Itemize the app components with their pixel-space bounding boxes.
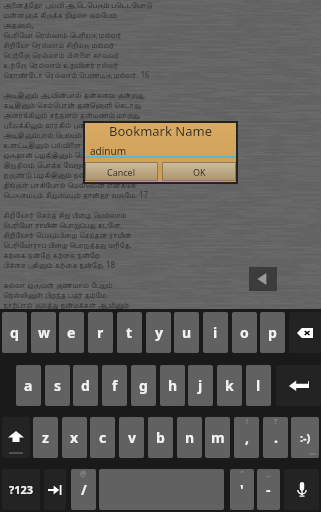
button[interactable]: emoji (291, 417, 319, 458)
staticText: adinum (90, 144, 127, 158)
staticText: OK (193, 166, 206, 178)
button[interactable]: @ (71, 469, 96, 510)
button[interactable]: s (45, 365, 70, 406)
button[interactable]: m (205, 417, 230, 458)
button[interactable]: Cancel (86, 163, 157, 180)
staticText: t (126, 323, 133, 342)
staticText: - (266, 480, 271, 499)
staticText: u (182, 323, 192, 342)
button[interactable]: g (131, 365, 156, 406)
button[interactable]: d (73, 365, 98, 406)
staticText: Cancel (107, 166, 136, 178)
staticText: ' (240, 480, 244, 499)
staticText: y (155, 323, 163, 342)
button[interactable]: shift (2, 417, 30, 458)
staticText: s (54, 376, 62, 395)
staticText: Bookmark Name (85, 122, 236, 140)
staticText: b (156, 428, 165, 447)
staticText: , (245, 428, 249, 447)
button[interactable]: ?123 (2, 469, 40, 510)
staticText: அடிஇனும் ஆவின்பால் தன்சுவை குன்றாது, (3, 89, 146, 99)
staticText: கற்கை நன்றே கற்கை நன்றே (3, 249, 100, 259)
button[interactable]: enter (276, 365, 321, 406)
button[interactable]: ! (234, 417, 259, 458)
button[interactable]: mic (284, 469, 319, 510)
button[interactable]: y (146, 312, 171, 353)
staticText: திங்குள் பாசிபோல் மெல்லென எனக்கே (3, 179, 136, 189)
staticText: h (168, 376, 178, 395)
staticText: சிறியோர் பெரும்பிழை செய்தன ராயின் (3, 229, 132, 239)
staticText: சிறியோ ரெல்லாம் சிறியரு மல்லர் (3, 39, 114, 49)
staticText: . (274, 428, 278, 447)
staticText: g (139, 376, 148, 395)
staticText: q (10, 323, 19, 342)
button[interactable]: c (90, 417, 115, 458)
button[interactable]: b (148, 417, 173, 458)
staticText: நாற்பால் குலத்து நன்மக்கள் ஆயினும் (3, 299, 129, 309)
staticText: c (99, 428, 107, 447)
staticText: உளட்டிஇனும் பல்விளை ரென்பது மரிதே (3, 139, 135, 149)
button[interactable]: a (16, 365, 41, 406)
staticText: w (38, 323, 50, 342)
staticText: பெற்றோ ரெல்லாம் பிள்ளை காவலர் (3, 49, 119, 59)
staticText: v (128, 428, 136, 447)
button[interactable]: q (2, 312, 27, 353)
staticText: பிச்சை புகினும் கற்கை நன்றே. 18 (3, 259, 116, 269)
staticText: z (42, 428, 49, 447)
staticText: ? (274, 417, 278, 427)
button[interactable]: n (177, 417, 202, 458)
staticText: அரைக்கிலும் சந்தனம் தன்மணம் மாறாது, (3, 109, 141, 119)
staticText: k (225, 376, 234, 395)
staticText: x (70, 428, 79, 447)
button[interactable]: f (102, 365, 127, 406)
button[interactable]: ? (263, 417, 288, 458)
button[interactable]: " (230, 469, 254, 510)
staticText: p (268, 323, 277, 342)
staticText: கல்லா ஒருவன் குணமால் பேதும் (3, 279, 113, 289)
button[interactable]: z (33, 417, 58, 458)
button[interactable]: p (260, 312, 285, 353)
button[interactable]: bksp (289, 312, 321, 353)
staticText: / (81, 480, 87, 499)
staticText: r (97, 323, 104, 342)
staticText: a (24, 376, 33, 395)
staticText: கடிஇனும் செம்பொன் தன்னொளி கெடாது, (3, 99, 142, 109)
button[interactable]: o (232, 312, 257, 353)
staticText: மன்னனாக் கிருக்க நிழலா கும்பேம் (3, 9, 117, 19)
staticText: கொண்டோ ரெல்லாம் பெணடிரு மல்லர். 16 (3, 69, 150, 79)
button[interactable]: i (203, 312, 228, 353)
staticText: l (256, 376, 261, 395)
staticText: i (213, 323, 218, 342)
staticText: e (67, 323, 76, 342)
staticText: ! (246, 417, 248, 427)
button[interactable]: w (31, 312, 56, 353)
button[interactable]: r (88, 312, 113, 353)
staticText: m (211, 428, 225, 447)
staticText: j (198, 376, 203, 395)
button[interactable]: v (119, 417, 144, 458)
staticText: " (241, 469, 244, 479)
button[interactable]: OK (163, 163, 235, 180)
button[interactable]: tab (44, 469, 66, 510)
button[interactable]: e (59, 312, 84, 353)
button[interactable]: t (117, 312, 142, 353)
staticText: இறுதிலம் பொக்க வேறுள சிறுபிழை (3, 159, 121, 169)
button[interactable]: j (188, 365, 213, 406)
staticText: o (240, 323, 249, 342)
button[interactable]: Previous page (249, 267, 277, 291)
staticText: றறாண்டு பழகிஇனும் நல்லவர் நட்பே (3, 169, 124, 179)
staticText: அதனால், (3, 19, 34, 29)
button[interactable]: x (62, 417, 87, 458)
button[interactable]: h (160, 365, 185, 406)
staticText: சிறியோர் செய்த சிறு பிழை யெல்லாம் (3, 209, 127, 219)
staticText: ஒருதான் பழகிஇனும் பெரியவர் பொறையே (3, 149, 145, 159)
button[interactable]: k (217, 365, 242, 406)
staticText: :-) (300, 430, 311, 445)
staticText: உற்றோ ரெல்லாம் உறவினர் ரல்லர் (3, 59, 119, 69)
button[interactable]: u (174, 312, 199, 353)
button[interactable]: _ (257, 469, 280, 510)
staticText: பெரியோராப் பிழை பொறுத்தது மரிதே. (3, 239, 132, 249)
staticText: நெல்லினுள் பிறந்த பதர் தம்மே. (3, 289, 109, 299)
button[interactable]: l (246, 365, 271, 406)
